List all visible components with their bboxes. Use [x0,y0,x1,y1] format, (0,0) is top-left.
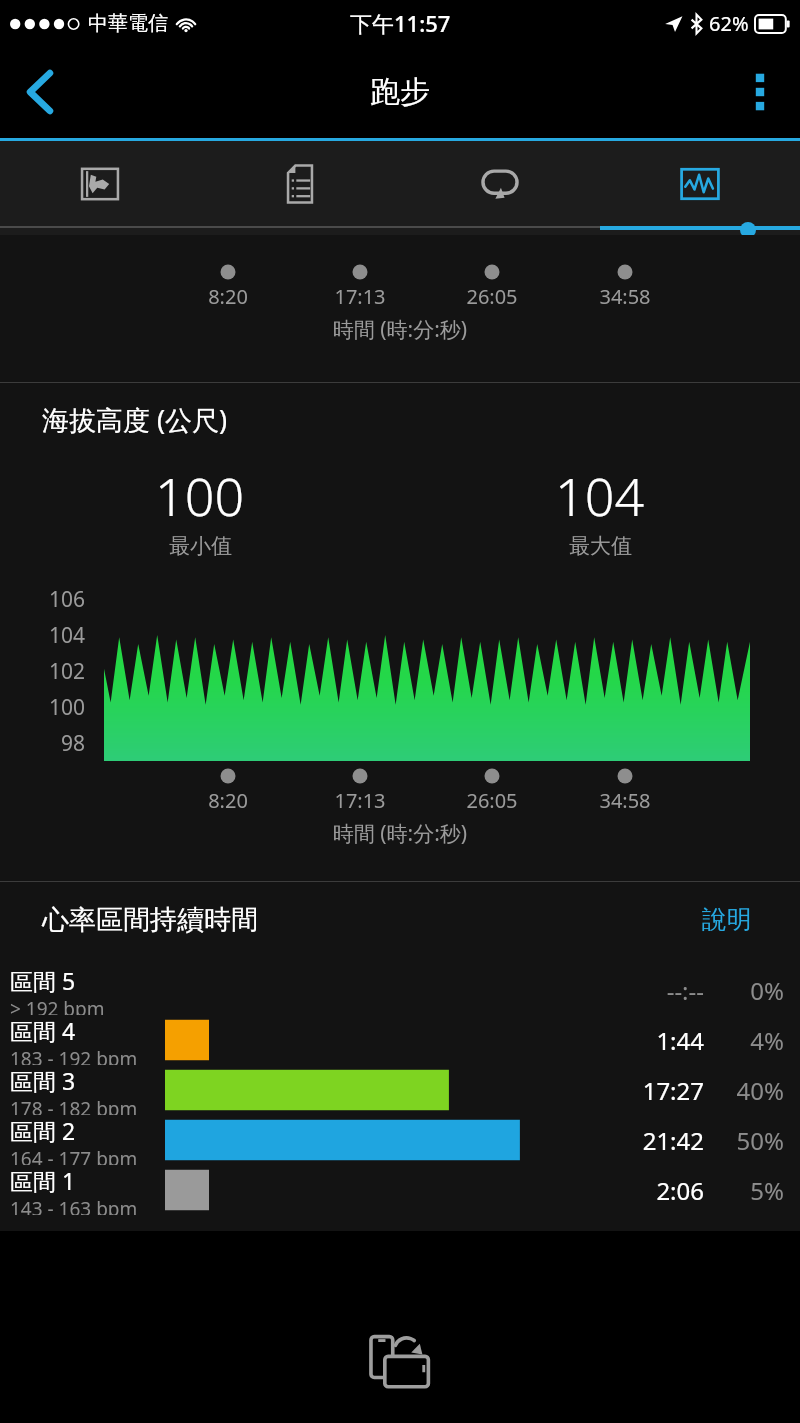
staticText: 143 - 163 bpm [10,1196,138,1215]
staticText: 心率區間持續時間 [42,903,258,937]
staticText: 26:05 [452,787,532,814]
staticText: 104 [555,460,645,531]
staticText: 50% [722,1124,784,1157]
staticText: 中華電信 [88,11,168,36]
staticText: 34:58 [585,283,665,310]
button[interactable]: Map [0,141,200,226]
button[interactable]: More options [720,46,800,138]
staticText: 跑步 [370,73,430,111]
staticText: 164 - 177 bpm [10,1146,138,1165]
button[interactable]: Rotate screen [360,1323,440,1403]
button[interactable]: 區間 1 [0,1165,800,1215]
button[interactable]: Back [0,46,80,138]
staticText: 最大值 [569,533,632,559]
staticText: 1:44 [594,1024,704,1057]
staticText: 最小值 [169,533,232,559]
staticText: 100 [155,460,245,531]
button[interactable]: Details [200,141,400,226]
button[interactable]: 區間 3 [0,1065,800,1115]
staticText: 區間 2 [10,1115,76,1146]
staticText: 26:05 [452,283,532,310]
staticText: 62% [709,10,749,37]
staticText: 時間 (時:分:秒) [0,315,800,344]
staticText: 說明 [702,904,752,935]
staticText: 178 - 182 bpm [10,1096,138,1115]
staticText: 17:13 [320,283,400,310]
staticText: 區間 1 [10,1165,76,1196]
staticText: 8:20 [188,787,268,814]
staticText: 17:13 [320,787,400,814]
staticText: --:-- [594,974,704,1007]
staticText: 下午11:57 [350,8,451,38]
staticText: 98 [61,729,86,758]
staticText: > 192 bpm [10,996,105,1015]
staticText: 區間 5 [10,965,76,996]
button[interactable]: 區間 5 [0,965,800,1015]
staticText: 海拔高度 (公尺) [42,401,228,438]
staticText: 183 - 192 bpm [10,1046,138,1065]
staticText: 102 [49,657,86,686]
staticText: 2:06 [594,1174,704,1207]
staticText: 40% [722,1074,784,1107]
button[interactable]: 區間 4 [0,1015,800,1065]
staticText: 區間 3 [10,1065,76,1096]
staticText: 4% [722,1024,784,1057]
staticText: 0% [722,974,784,1007]
button[interactable]: 區間 2 [0,1115,800,1165]
staticText: 21:42 [594,1124,704,1157]
staticText: 104 [49,621,86,650]
button[interactable]: 說明 [696,898,758,941]
staticText: 100 [49,693,86,722]
staticText: 34:58 [585,787,665,814]
button[interactable]: Laps [400,141,600,226]
staticText: 17:27 [594,1074,704,1107]
button[interactable]: Charts [600,141,800,226]
staticText: 時間 (時:分:秒) [0,819,800,848]
staticText: 5% [722,1174,784,1207]
staticText: 區間 4 [10,1015,76,1046]
staticText: 8:20 [188,283,268,310]
staticText: 106 [49,585,86,614]
